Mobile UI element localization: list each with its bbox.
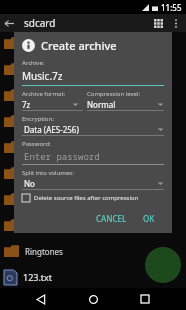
button[interactable]: Ringtones — [0, 238, 186, 264]
staticText: sdcard — [24, 16, 56, 30]
staticText: No — [24, 178, 35, 189]
staticText: Split into volumes: — [22, 169, 74, 177]
staticText: Data (AES-256) — [24, 124, 79, 135]
button[interactable]: Recent apps — [134, 288, 156, 310]
button[interactable]: More options — [168, 15, 184, 31]
button[interactable] — [0, 212, 186, 238]
button[interactable]: Delete source files after compression — [22, 194, 164, 202]
staticText: 11:55 — [161, 2, 182, 13]
button[interactable] — [0, 160, 186, 186]
button[interactable]: Grid view — [148, 14, 168, 32]
button[interactable] — [0, 82, 186, 108]
staticText: Encryption: — [22, 115, 54, 123]
staticText: Password: — [22, 140, 51, 148]
staticText: Enter password — [24, 150, 100, 162]
button[interactable]: Add — [145, 247, 181, 283]
staticText: Create archive — [41, 38, 117, 53]
button[interactable] — [0, 56, 186, 82]
button[interactable]: Home — [82, 288, 104, 310]
button[interactable]: OK — [138, 210, 160, 227]
button[interactable]: Enter password — [22, 150, 164, 162]
button[interactable]: CANCEL — [91, 210, 132, 227]
staticText: Ringtones — [25, 246, 63, 257]
button[interactable]: 123.txt — [0, 266, 186, 288]
button[interactable]: 7z — [22, 99, 83, 110]
staticText: Normal — [87, 99, 116, 110]
staticText: 123.txt — [23, 271, 53, 283]
staticText: OK — [143, 213, 155, 224]
staticText: CANCEL — [96, 213, 127, 224]
button[interactable]: Back — [30, 288, 52, 310]
button[interactable] — [0, 134, 186, 160]
staticText: Delete source files after compression — [34, 194, 139, 202]
staticText: Music.7z — [22, 69, 63, 83]
button[interactable]: Data (AES-256) — [22, 124, 164, 135]
button[interactable] — [0, 30, 186, 56]
staticText: Archive format: — [22, 90, 66, 98]
staticText: Archive: — [22, 59, 45, 67]
button[interactable] — [0, 108, 186, 134]
button[interactable]: Normal — [87, 99, 164, 110]
button[interactable]: No — [22, 178, 164, 189]
staticText: Compression level: — [87, 90, 141, 98]
staticText: 7z — [22, 99, 31, 110]
button[interactable]: Back — [0, 14, 18, 32]
button[interactable] — [0, 186, 186, 212]
